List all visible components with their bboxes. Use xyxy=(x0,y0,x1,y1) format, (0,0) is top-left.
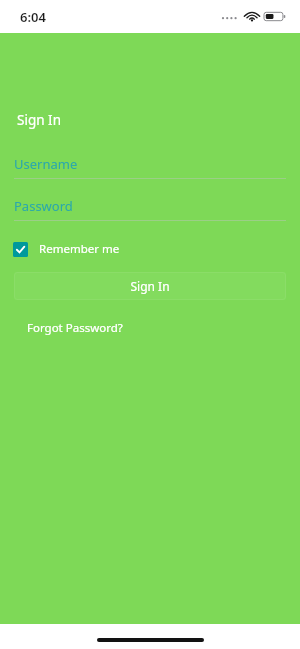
staticText: Forgot Password? xyxy=(27,320,123,336)
button[interactable]: Remember me xyxy=(13,241,120,257)
staticText: 6:04 xyxy=(20,8,46,26)
button[interactable]: Password xyxy=(14,197,286,221)
staticText: Remember me xyxy=(39,241,120,257)
staticText: Username xyxy=(14,155,78,173)
button[interactable]: Forgot Password? xyxy=(27,320,123,336)
staticText: Sign In xyxy=(17,111,61,129)
button[interactable]: Sign In xyxy=(14,272,286,300)
button[interactable]: Username xyxy=(14,155,286,179)
staticText: Sign In xyxy=(130,278,170,294)
staticText: Password xyxy=(14,197,73,215)
